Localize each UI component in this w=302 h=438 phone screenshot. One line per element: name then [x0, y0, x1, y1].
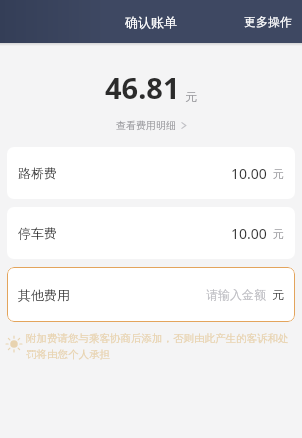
staticText: 元 [273, 167, 284, 181]
staticText: 10.00 [231, 224, 267, 243]
staticText: 元 [272, 287, 284, 302]
staticText: 附加费请您与乘客协商后添加，否则由此产生的客诉和处罚将由您个人承担 [26, 332, 290, 361]
staticText: 10.00 [231, 164, 267, 183]
button[interactable]: 查看费用明细 [108, 116, 195, 135]
staticText: 路桥费 [18, 165, 57, 181]
button[interactable]: 停车费 [7, 207, 295, 259]
staticText: 元 [273, 227, 284, 241]
staticText: 元 [185, 89, 197, 104]
button[interactable]: 确认账单 [125, 14, 177, 30]
staticText: 更多操作 [244, 14, 292, 29]
staticText: 停车费 [18, 225, 57, 241]
button[interactable]: 更多操作 [234, 8, 302, 35]
other: 提示 [7, 337, 21, 351]
button[interactable]: 其他费用 [7, 267, 295, 322]
staticText: 查看费用明细 [116, 119, 176, 132]
button[interactable]: 路桥费 [7, 147, 295, 199]
staticText: 46.81 [105, 68, 180, 107]
staticText: 请输入金额 [206, 287, 266, 302]
staticText: 其他费用 [18, 287, 70, 303]
